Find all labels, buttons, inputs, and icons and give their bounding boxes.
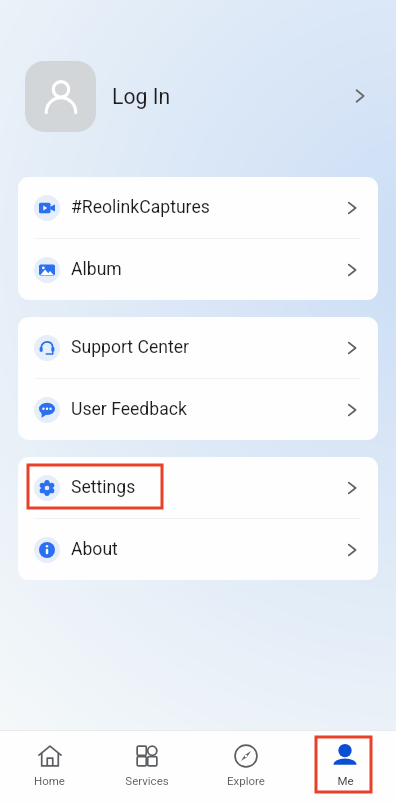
button[interactable]: Home <box>0 731 98 804</box>
staticText: Log In <box>112 84 171 109</box>
staticText: Me <box>337 774 354 787</box>
button[interactable]: Explore <box>196 731 295 804</box>
staticText: Settings <box>71 477 136 498</box>
staticText: #ReolinkCaptures <box>71 197 210 218</box>
staticText: Home <box>34 774 65 787</box>
staticText: About <box>71 539 118 560</box>
staticText: Support Center <box>71 337 189 358</box>
button[interactable]: Me <box>295 731 394 804</box>
button[interactable]: #ReolinkCaptures <box>18 177 378 238</box>
staticText: Services <box>125 774 169 787</box>
button[interactable]: Settings <box>18 457 378 518</box>
button[interactable]: About <box>18 519 378 580</box>
button[interactable]: Log In <box>0 60 396 132</box>
button[interactable]: User Feedback <box>18 379 378 440</box>
staticText: User Feedback <box>71 399 187 420</box>
button[interactable]: Album <box>18 239 378 300</box>
staticText: Explore <box>227 774 265 787</box>
button[interactable]: Support Center <box>18 317 378 378</box>
staticText: Album <box>71 259 122 280</box>
button[interactable]: Services <box>98 731 196 804</box>
